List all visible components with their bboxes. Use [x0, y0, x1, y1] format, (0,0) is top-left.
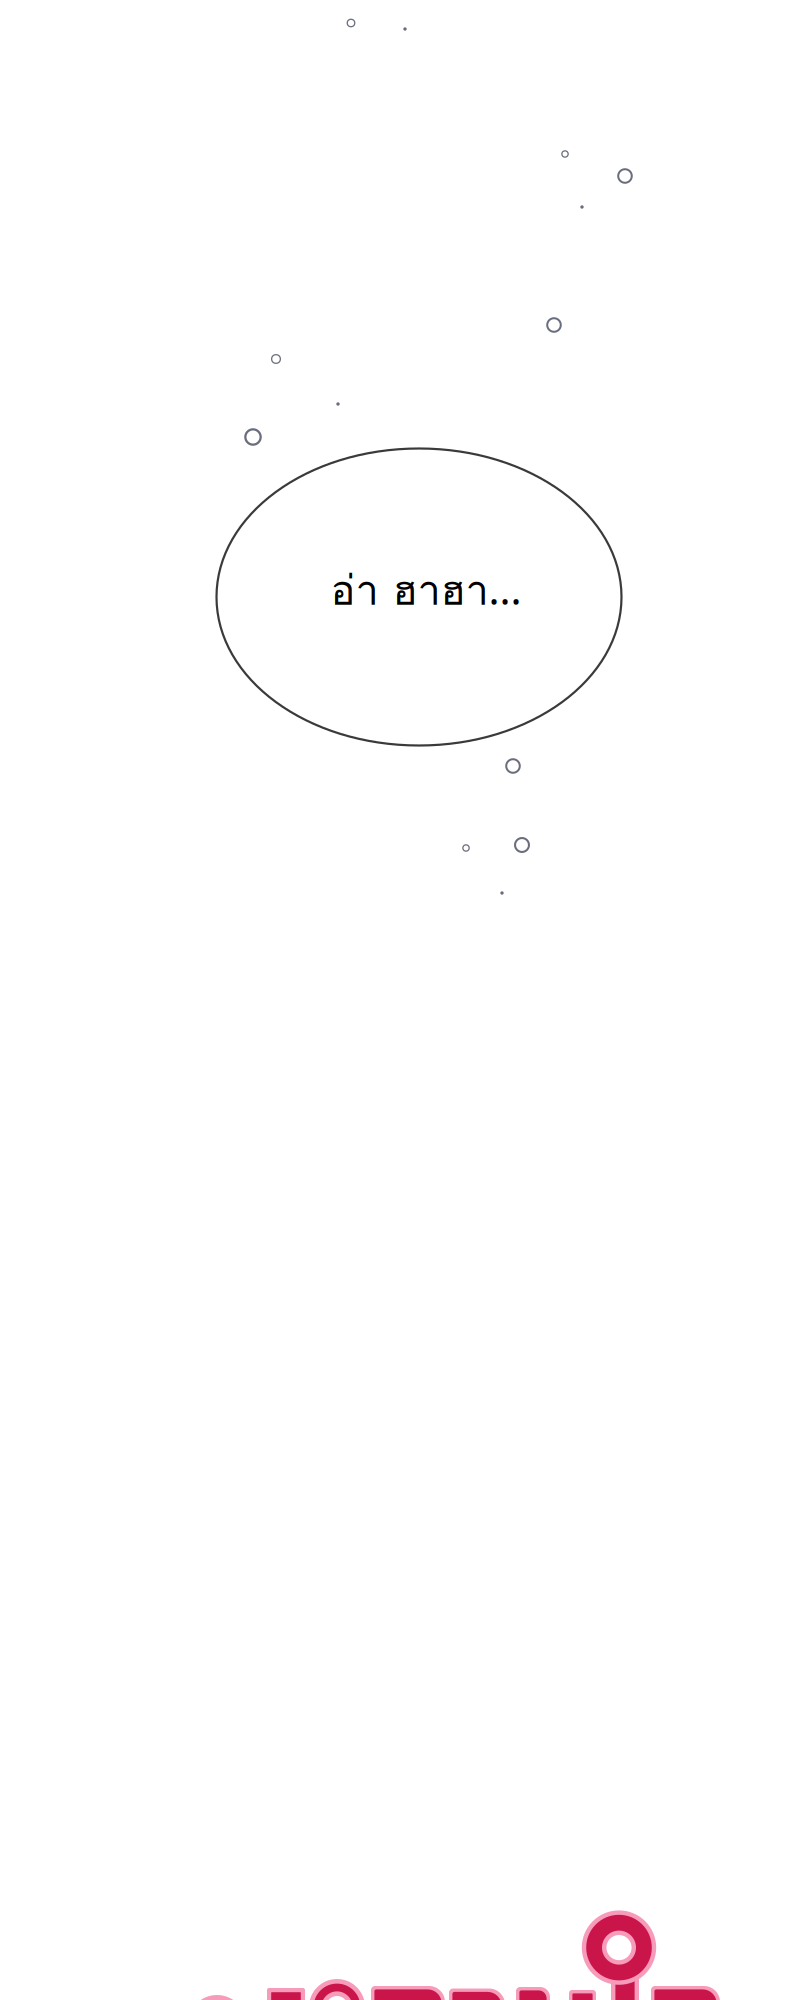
- staticText: อ่า ฮาฮา...: [330, 558, 521, 622]
- button[interactable]: Comic panel: [0, 0, 800, 2000]
